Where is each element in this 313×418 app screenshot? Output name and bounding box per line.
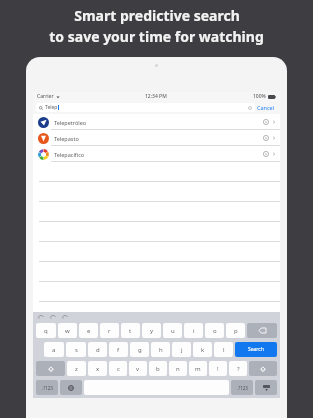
button[interactable]: Telepacífico bbox=[33, 146, 280, 162]
staticText: Telep bbox=[45, 104, 58, 111]
button[interactable]: i bbox=[184, 323, 203, 338]
staticText: Cancel bbox=[257, 104, 275, 111]
button[interactable]: o bbox=[205, 323, 224, 338]
staticText: v bbox=[136, 365, 140, 373]
button[interactable]: l bbox=[214, 342, 233, 357]
button[interactable]: Shift bbox=[36, 361, 65, 376]
staticText: q bbox=[44, 327, 48, 335]
staticText: 12:34 PM bbox=[145, 93, 167, 100]
button[interactable]: m bbox=[189, 361, 207, 376]
staticText: ! bbox=[217, 365, 219, 373]
button[interactable]: Search bbox=[235, 342, 277, 357]
button[interactable]: s bbox=[66, 342, 86, 357]
staticText: Smart predictive search bbox=[74, 6, 240, 25]
other: Info bbox=[263, 135, 269, 141]
button[interactable]: a bbox=[44, 342, 64, 357]
staticText: m bbox=[195, 365, 201, 373]
staticText: o bbox=[213, 327, 217, 335]
button[interactable]: u bbox=[163, 323, 182, 338]
button[interactable]: w bbox=[58, 323, 77, 338]
button[interactable]: n bbox=[169, 361, 187, 376]
staticText: s bbox=[75, 346, 78, 354]
staticText: h bbox=[159, 346, 163, 354]
button[interactable]: Paste bbox=[62, 314, 68, 320]
other: Info bbox=[263, 151, 269, 157]
button[interactable]: .?123 bbox=[231, 380, 253, 395]
button[interactable]: t bbox=[121, 323, 140, 338]
staticText: Carrier bbox=[37, 93, 54, 100]
button[interactable]: r bbox=[100, 323, 119, 338]
staticText: e bbox=[87, 327, 91, 335]
staticText: x bbox=[96, 365, 100, 373]
button[interactable]: ! bbox=[209, 361, 227, 376]
button[interactable]: Hide keyboard bbox=[255, 380, 277, 395]
button[interactable]: f bbox=[109, 342, 128, 357]
button[interactable]: j bbox=[172, 342, 191, 357]
button[interactable]: c bbox=[109, 361, 127, 376]
button[interactable]: h bbox=[151, 342, 170, 357]
staticText: a bbox=[52, 346, 56, 354]
staticText: b bbox=[156, 365, 160, 373]
staticText: p bbox=[234, 327, 238, 335]
staticText: c bbox=[117, 365, 120, 373]
staticText: d bbox=[96, 346, 100, 354]
button[interactable]: g bbox=[130, 342, 149, 357]
staticText: r bbox=[108, 327, 111, 335]
button[interactable]: Change language bbox=[60, 380, 82, 395]
button[interactable]: Delete bbox=[247, 323, 277, 338]
button[interactable]: z bbox=[67, 361, 86, 376]
button[interactable]: p bbox=[226, 323, 245, 338]
button[interactable]: Telepasto bbox=[33, 130, 280, 146]
staticText: u bbox=[171, 327, 175, 335]
staticText: t bbox=[129, 327, 132, 335]
staticText: to save your time for watching bbox=[49, 27, 264, 46]
other: Info bbox=[263, 119, 269, 125]
button[interactable]: .?123 bbox=[36, 380, 58, 395]
staticText: .?123 bbox=[237, 385, 248, 391]
staticText: i bbox=[193, 327, 195, 335]
staticText: z bbox=[75, 365, 78, 373]
staticText: l bbox=[223, 346, 225, 354]
button[interactable]: x bbox=[88, 361, 107, 376]
staticText: Telepacífico bbox=[54, 151, 85, 158]
button[interactable]: e bbox=[79, 323, 98, 338]
button[interactable]: y bbox=[142, 323, 161, 338]
button[interactable]: Shift bbox=[249, 361, 277, 376]
button[interactable]: Telepetróleo bbox=[33, 114, 280, 130]
staticText: j bbox=[181, 346, 183, 354]
staticText: y bbox=[150, 327, 154, 335]
staticText: .?123 bbox=[42, 385, 53, 391]
staticText: k bbox=[201, 346, 205, 354]
button[interactable]: Cancel bbox=[255, 104, 277, 111]
staticText: w bbox=[65, 327, 70, 335]
button[interactable]: Telep bbox=[36, 103, 255, 112]
button[interactable]: Undo bbox=[38, 314, 44, 320]
button[interactable]: Redo bbox=[50, 314, 56, 320]
button[interactable]: k bbox=[193, 342, 212, 357]
staticText: Search bbox=[248, 346, 264, 353]
button[interactable]: d bbox=[88, 342, 107, 357]
staticText: ? bbox=[237, 365, 240, 373]
button[interactable]: v bbox=[129, 361, 147, 376]
staticText: Telepasto bbox=[54, 135, 79, 142]
staticText: f bbox=[117, 346, 120, 354]
staticText: 100% bbox=[253, 93, 266, 100]
staticText: Telepetróleo bbox=[54, 119, 87, 126]
button[interactable]: q bbox=[36, 323, 56, 338]
staticText: n bbox=[176, 365, 180, 373]
button[interactable]: ? bbox=[229, 361, 247, 376]
staticText: g bbox=[138, 346, 142, 354]
button[interactable]: b bbox=[149, 361, 167, 376]
